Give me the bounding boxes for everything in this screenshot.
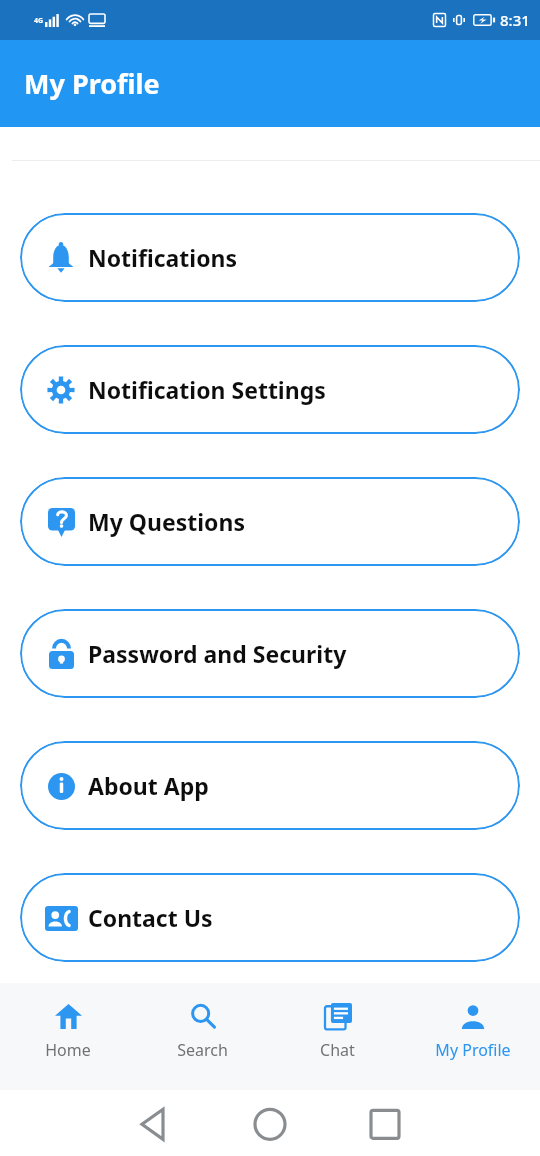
staticText: Search — [177, 1039, 228, 1061]
staticText: Notification Settings — [88, 374, 326, 405]
staticText: 4G — [34, 16, 44, 26]
staticText: My Profile — [24, 65, 160, 102]
button[interactable]: My Questions — [20, 477, 520, 566]
button[interactable]: Contact Us — [20, 873, 520, 962]
staticText: My Questions — [88, 506, 245, 537]
button[interactable]: Search — [135, 983, 270, 1090]
staticText: Password and Security — [88, 638, 347, 669]
button[interactable]: Notification Settings — [20, 345, 520, 434]
button[interactable]: About App — [20, 741, 520, 830]
button[interactable]: Home — [0, 983, 135, 1090]
staticText: About App — [88, 770, 209, 801]
staticText: Home — [45, 1039, 91, 1061]
staticText: Notifications — [88, 242, 238, 273]
button[interactable]: Chat — [270, 983, 405, 1090]
staticText: Contact Us — [88, 902, 213, 933]
button[interactable]: Notifications — [20, 213, 520, 302]
staticText: My Profile — [435, 1039, 511, 1061]
staticText: 8:31 — [500, 10, 530, 30]
staticText: Chat — [320, 1039, 355, 1061]
button[interactable]: Password and Security — [20, 609, 520, 698]
button[interactable]: My Profile — [405, 983, 540, 1090]
